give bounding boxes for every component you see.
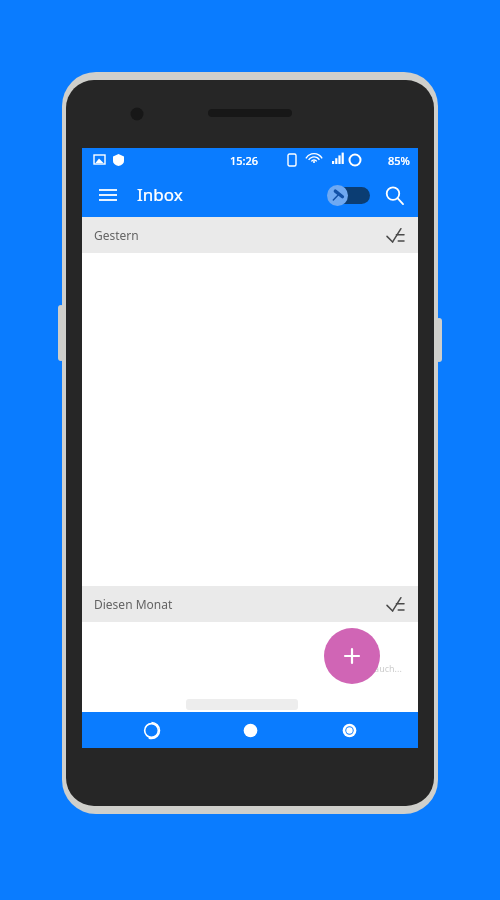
button[interactable]: Suchen [378,179,410,211]
button[interactable]: Gestern [82,217,418,253]
button[interactable]: Alle als gelesen markieren [382,222,408,248]
staticText: Verbrauch... [351,662,402,674]
button[interactable]: Übersicht [319,712,379,748]
button[interactable]: Hinzufügen [324,628,380,684]
button[interactable]: Startseite [220,712,280,748]
button[interactable]: Alle als gelesen markieren [382,591,408,617]
staticText: 85% [388,153,410,168]
staticText: Gestern [94,227,139,243]
staticText: Diesen Monat [94,596,173,612]
button[interactable]: Diesen Monat [82,586,418,622]
staticText: Inbox [137,183,183,206]
button[interactable]: Zurück [121,712,181,748]
staticText: 15:26 [230,153,259,168]
button[interactable]: Anheften umschalten [327,183,371,207]
button[interactable]: Menü [92,179,124,211]
